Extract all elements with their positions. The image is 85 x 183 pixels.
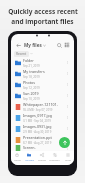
button[interactable]: Sun 2019: [11, 90, 74, 101]
staticText: My transfers: [23, 69, 45, 74]
staticText: Shared: [38, 158, 46, 161]
button[interactable]: Screen-Capture-0007.mp4: [11, 145, 74, 151]
button[interactable]: Photos: [11, 79, 74, 90]
staticText: Transfers: [49, 158, 60, 161]
button[interactable]: Upload: [59, 137, 70, 148]
staticText: Photos: [23, 80, 35, 85]
button[interactable]: My transfers: [11, 68, 74, 79]
button[interactable]: Search: [55, 41, 63, 49]
button[interactable]: More options: [64, 103, 71, 110]
button[interactable]: More options: [64, 92, 71, 99]
staticText: Home: [14, 158, 21, 161]
staticText: 3.1 MB · Sep 04, 2019: [23, 119, 51, 123]
button[interactable]: Transfers: [48, 151, 61, 165]
staticText: Sep 18, 2019: [23, 75, 40, 79]
button[interactable]: Images-0931.jpg: [11, 123, 74, 134]
staticText: Folder: [23, 58, 34, 63]
staticText: More: [65, 158, 71, 161]
button[interactable]: Images_0917.jpg: [11, 112, 74, 123]
button[interactable]: More options: [64, 59, 71, 66]
staticText: My files: [24, 42, 42, 48]
button[interactable]: More options: [64, 145, 71, 151]
button[interactable]: More options: [64, 114, 71, 121]
staticText: Screen-Capture-0007.mp4: [23, 145, 64, 150]
button[interactable]: More options: [64, 81, 71, 88]
button[interactable]: Whitepaper-121101-v05-Final...: [11, 101, 74, 112]
staticText: Presentation.ppt: [23, 135, 52, 140]
staticText: Images-0931.jpg: [23, 124, 52, 129]
button[interactable]: More: [61, 151, 74, 165]
button[interactable]: More options: [64, 136, 71, 143]
staticText: Sep 21, 2019: [23, 64, 40, 68]
button[interactable]: Recent: [16, 52, 27, 56]
staticText: Whitepaper-121101-v05-Final...: [23, 102, 64, 107]
staticText: Quickly access recent: [8, 7, 78, 16]
button[interactable]: My files: [23, 151, 35, 165]
button[interactable]: Folder: [11, 57, 74, 68]
button[interactable]: Shared: [35, 151, 48, 165]
staticText: Sun 2019: [23, 91, 39, 96]
staticText: Sep 12, 2019: [23, 86, 40, 90]
staticText: Sep 10, 2019: [23, 97, 40, 101]
staticText: 8.7 MB · Aug 27, 2019: [23, 141, 52, 145]
button[interactable]: View options: [63, 41, 71, 49]
staticText: Images_0917.jpg: [23, 113, 52, 118]
staticText: My files: [25, 158, 34, 161]
staticText: 55.4 MB · Sep 07, 2019: [23, 108, 53, 112]
button[interactable]: More options: [64, 125, 71, 132]
button[interactable]: Presentation.ppt: [11, 134, 74, 145]
staticText: Recent: [16, 52, 27, 56]
button[interactable]: Home: [11, 151, 23, 165]
button[interactable]: Back: [14, 41, 22, 49]
button[interactable]: My files: [24, 42, 55, 48]
staticText: and important files: [11, 17, 74, 26]
button[interactable]: More options: [64, 70, 71, 77]
staticText: 2.9 MB · Aug 30, 2019: [23, 130, 52, 134]
